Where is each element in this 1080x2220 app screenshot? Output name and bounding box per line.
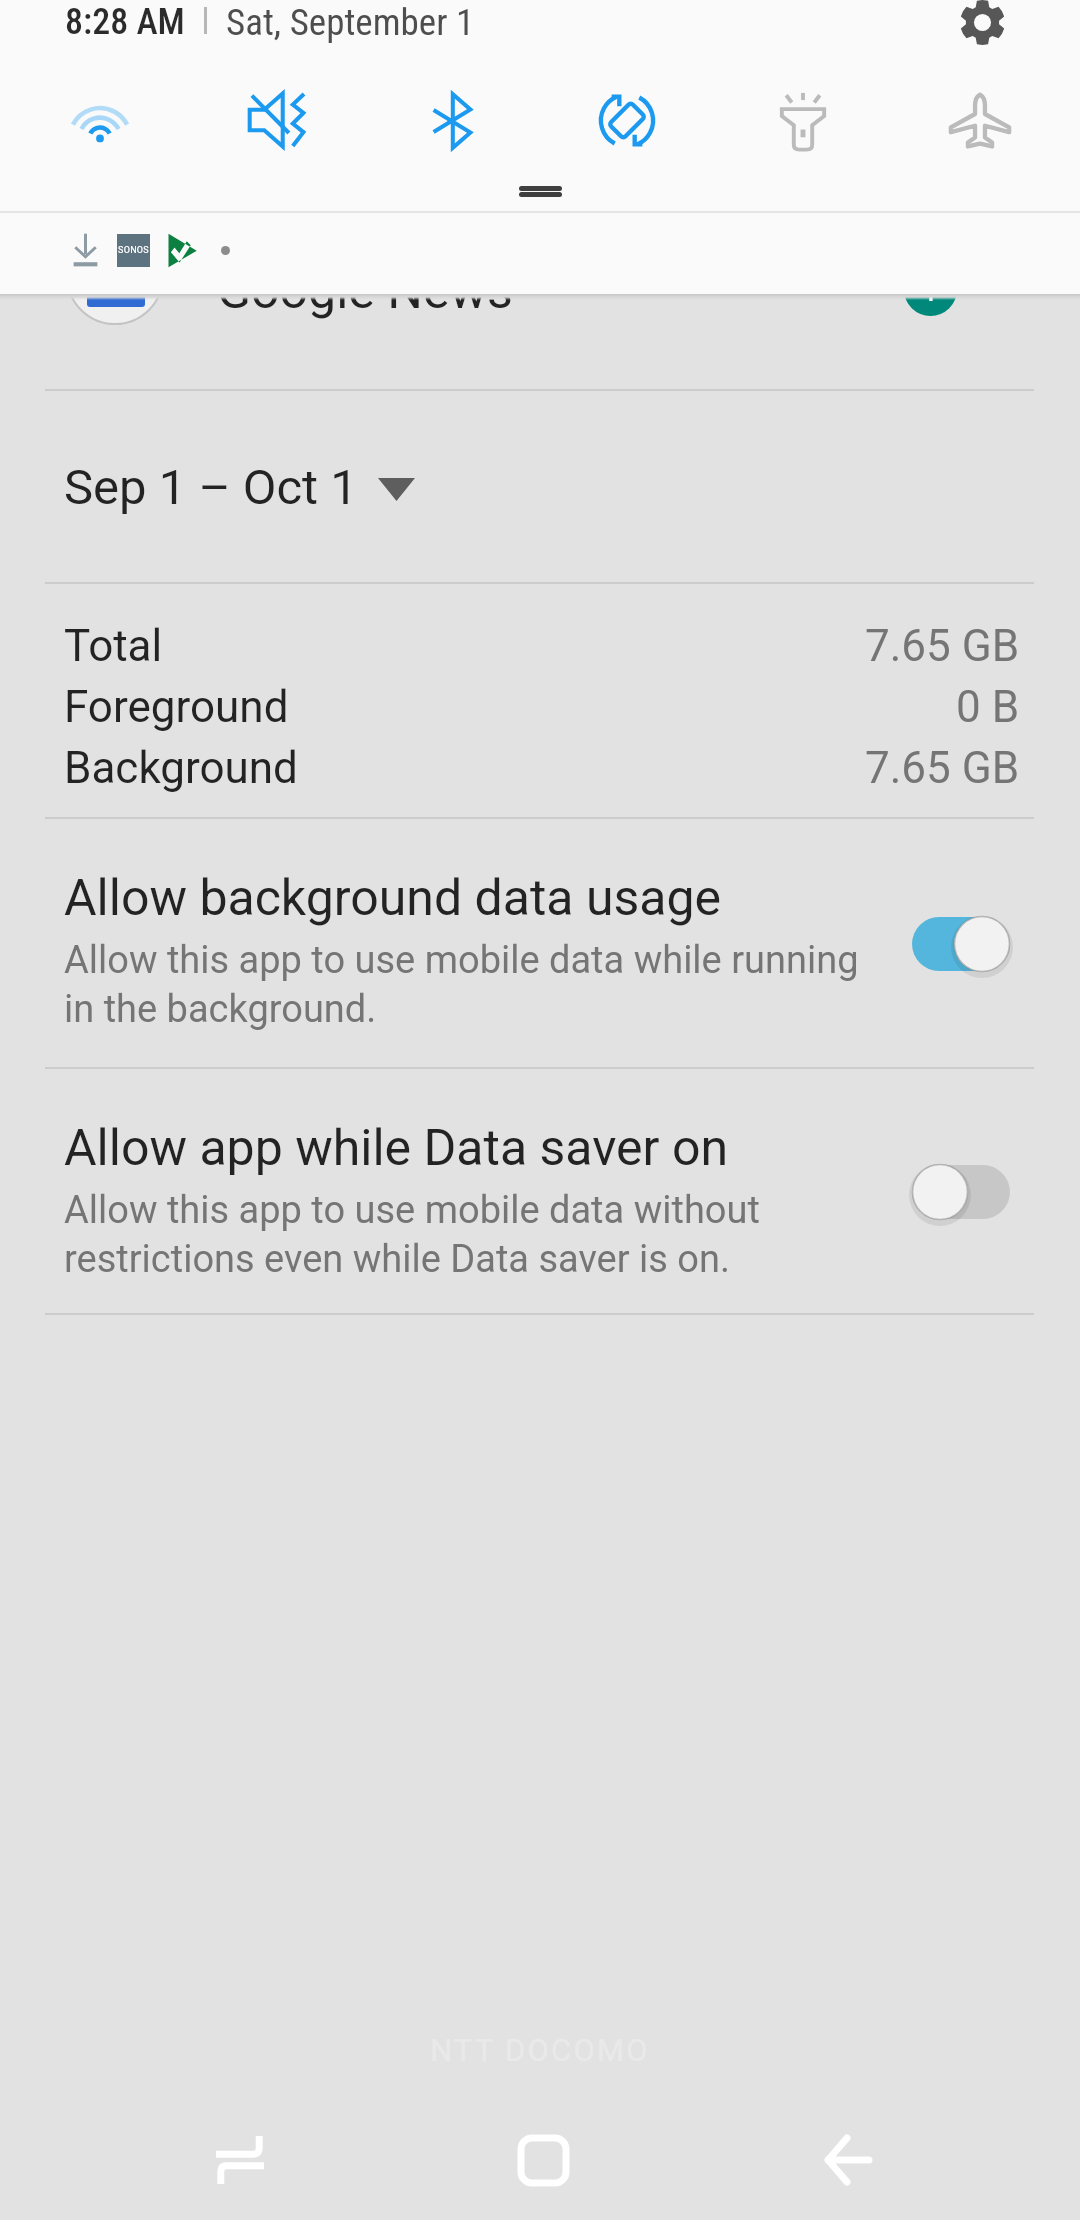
button[interactable]: Settings	[948, 0, 1016, 56]
staticText: restrictions even while Data saver is on…	[64, 1237, 730, 1282]
staticText: i	[927, 271, 935, 309]
staticText: in the background.	[64, 987, 377, 1032]
button[interactable]: Sep 1 – Oct 1	[0, 392, 1080, 582]
staticText: Sat, September 1	[226, 1, 475, 44]
button[interactable]: Home	[483, 2100, 603, 2220]
staticText: Allow app while Data saver on	[64, 1119, 729, 1178]
button[interactable]: Google News	[0, 180, 1080, 350]
button[interactable]: Auto rotate	[577, 70, 677, 170]
staticText: Allow background data usage	[64, 869, 722, 928]
staticText: 0 B	[956, 681, 1020, 733]
staticText: 8:28 AM	[65, 1, 185, 43]
button[interactable]: Back	[787, 2100, 907, 2220]
staticText: 7.65 GB	[865, 742, 1020, 794]
button[interactable]: Wi-Fi	[50, 69, 150, 169]
staticText: Allow this app to use mobile data while …	[64, 938, 859, 983]
button[interactable]: Flashlight	[753, 72, 853, 172]
button[interactable]: Allow app while Data saver on	[0, 1101, 1080, 1296]
button[interactable]: Airplane mode	[930, 71, 1030, 171]
button[interactable]: Expand quick settings	[480, 165, 600, 213]
staticText: Total	[64, 620, 163, 672]
button[interactable]: Bluetooth	[402, 71, 502, 171]
staticText: 7.65 GB	[865, 620, 1020, 672]
staticText: Background	[64, 742, 298, 794]
button[interactable]: On	[906, 908, 1014, 980]
button[interactable]: App info	[904, 263, 957, 316]
button[interactable]: Allow background data usage	[0, 851, 1080, 1046]
button[interactable]: Sound	[226, 70, 326, 170]
button[interactable]: Recents	[180, 2100, 300, 2220]
button[interactable]: Off	[906, 1156, 1014, 1228]
staticText: Foreground	[64, 681, 289, 733]
staticText: Google News	[217, 262, 513, 321]
staticText: Sep 1 – Oct 1	[64, 459, 358, 516]
staticText: Allow this app to use mobile data withou…	[64, 1188, 760, 1233]
staticText: SONOS	[118, 245, 149, 256]
